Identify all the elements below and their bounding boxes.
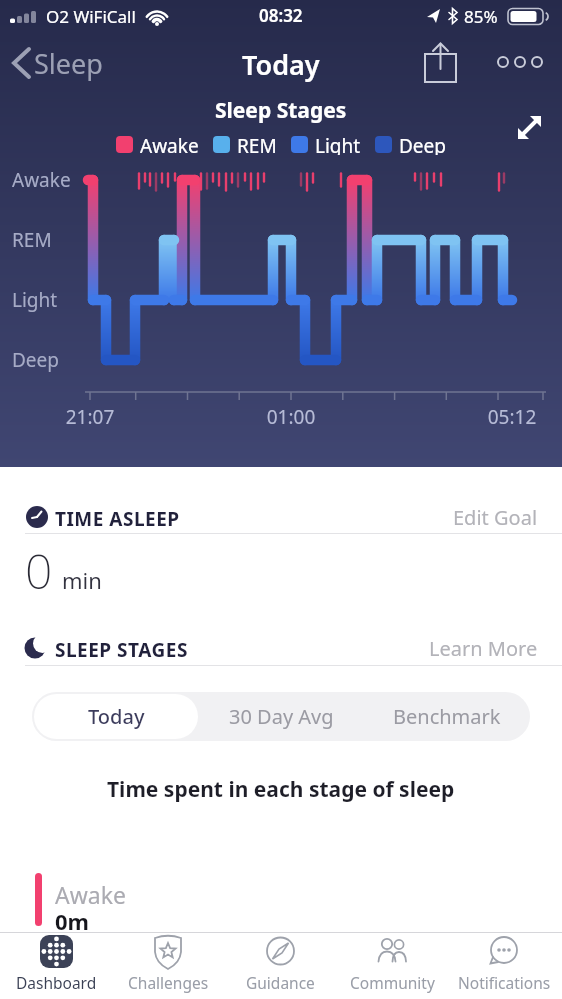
staticText: 30 Day Avg xyxy=(229,703,334,730)
staticText: 05:12 xyxy=(482,404,542,430)
staticText: Benchmark xyxy=(393,703,501,730)
button[interactable]: Dashboard xyxy=(0,933,112,999)
button[interactable] xyxy=(510,108,550,148)
staticText: Dashboard xyxy=(16,972,97,993)
staticText: REM xyxy=(237,133,277,155)
staticText: Awake xyxy=(12,167,71,193)
staticText: Today xyxy=(242,46,320,83)
button[interactable]: Benchmark xyxy=(364,692,530,741)
staticText: Edit Goal xyxy=(453,504,538,531)
staticText: Learn More xyxy=(429,635,538,662)
staticText: 08:32 xyxy=(259,4,303,27)
staticText: Challenges xyxy=(128,972,209,993)
button[interactable]: Notifications xyxy=(448,933,560,999)
staticText: Light xyxy=(12,287,58,313)
staticText: 0m xyxy=(55,906,90,936)
staticText: Sleep xyxy=(34,45,103,82)
staticText: Awake xyxy=(140,133,199,155)
staticText: SLEEP STAGES xyxy=(55,637,188,663)
button[interactable]: Challenges xyxy=(112,933,224,999)
button[interactable]: Learn More xyxy=(390,631,550,665)
staticText: Guidance xyxy=(246,972,315,993)
staticText: Light xyxy=(315,133,361,155)
staticText: Sleep Stages xyxy=(215,96,347,125)
staticText: Time spent in each stage of sleep xyxy=(107,775,455,804)
staticText: 21:07 xyxy=(60,404,120,430)
button[interactable]: Edit Goal xyxy=(440,500,550,534)
button[interactable]: Guidance xyxy=(224,933,336,999)
staticText: Notifications xyxy=(458,972,551,993)
staticText: Deep xyxy=(12,347,59,373)
staticText: Today xyxy=(88,703,145,730)
staticText: 85% xyxy=(464,5,498,28)
button[interactable]: Today xyxy=(34,694,198,739)
staticText: min xyxy=(62,565,102,595)
button[interactable]: 30 Day Avg xyxy=(198,692,364,741)
staticText: O2 WiFiCall xyxy=(46,5,136,28)
button[interactable]: Community xyxy=(336,933,448,999)
staticText: Awake xyxy=(55,879,126,910)
button[interactable] xyxy=(420,40,464,86)
staticText: REM xyxy=(12,227,52,253)
staticText: Deep xyxy=(399,133,446,155)
button[interactable] xyxy=(492,44,548,80)
staticText: TIME ASLEEP xyxy=(55,506,180,532)
staticText: 0 xyxy=(25,538,53,603)
staticText: Community xyxy=(350,972,435,993)
button[interactable]: Sleep xyxy=(6,40,116,86)
staticText: 01:00 xyxy=(261,404,321,430)
